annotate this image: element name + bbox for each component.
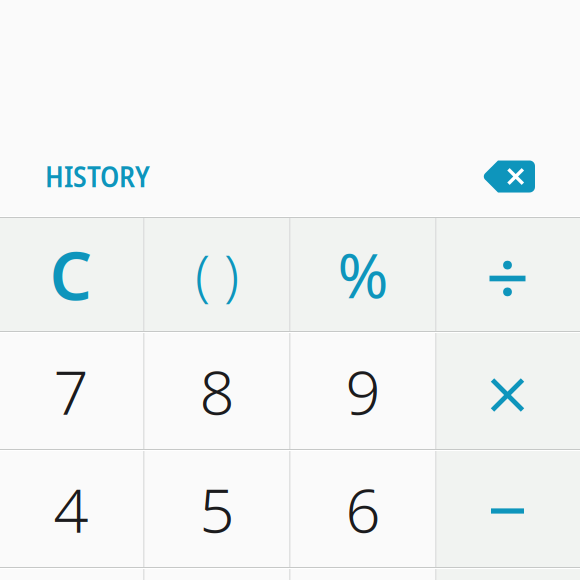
button[interactable]: 6 bbox=[290, 451, 435, 567]
button[interactable]: 7 bbox=[0, 333, 143, 449]
staticText: 8 bbox=[199, 350, 234, 432]
staticText: 9 bbox=[345, 350, 380, 432]
button[interactable]: C bbox=[0, 218, 143, 331]
button[interactable]: 9 bbox=[290, 333, 435, 449]
staticText: C bbox=[49, 230, 92, 319]
button[interactable]: Divide bbox=[436, 218, 580, 331]
staticText: 5 bbox=[199, 468, 234, 550]
staticText: ( ) bbox=[195, 238, 239, 311]
staticText: 6 bbox=[345, 468, 380, 550]
button[interactable]: 5 bbox=[144, 451, 289, 567]
button[interactable]: ( ) bbox=[144, 218, 289, 331]
button[interactable]: Delete bbox=[482, 160, 535, 192]
staticText: 7 bbox=[53, 350, 88, 432]
staticText: 4 bbox=[53, 468, 88, 550]
button[interactable]: 8 bbox=[144, 333, 289, 449]
button[interactable]: Multiply bbox=[436, 333, 580, 449]
staticText: HISTORY bbox=[45, 157, 150, 195]
button[interactable]: HISTORY bbox=[45, 157, 150, 195]
button[interactable]: 4 bbox=[0, 451, 143, 567]
button[interactable]: % bbox=[290, 218, 435, 331]
staticText: % bbox=[337, 234, 388, 315]
button[interactable]: Subtract bbox=[436, 451, 580, 567]
